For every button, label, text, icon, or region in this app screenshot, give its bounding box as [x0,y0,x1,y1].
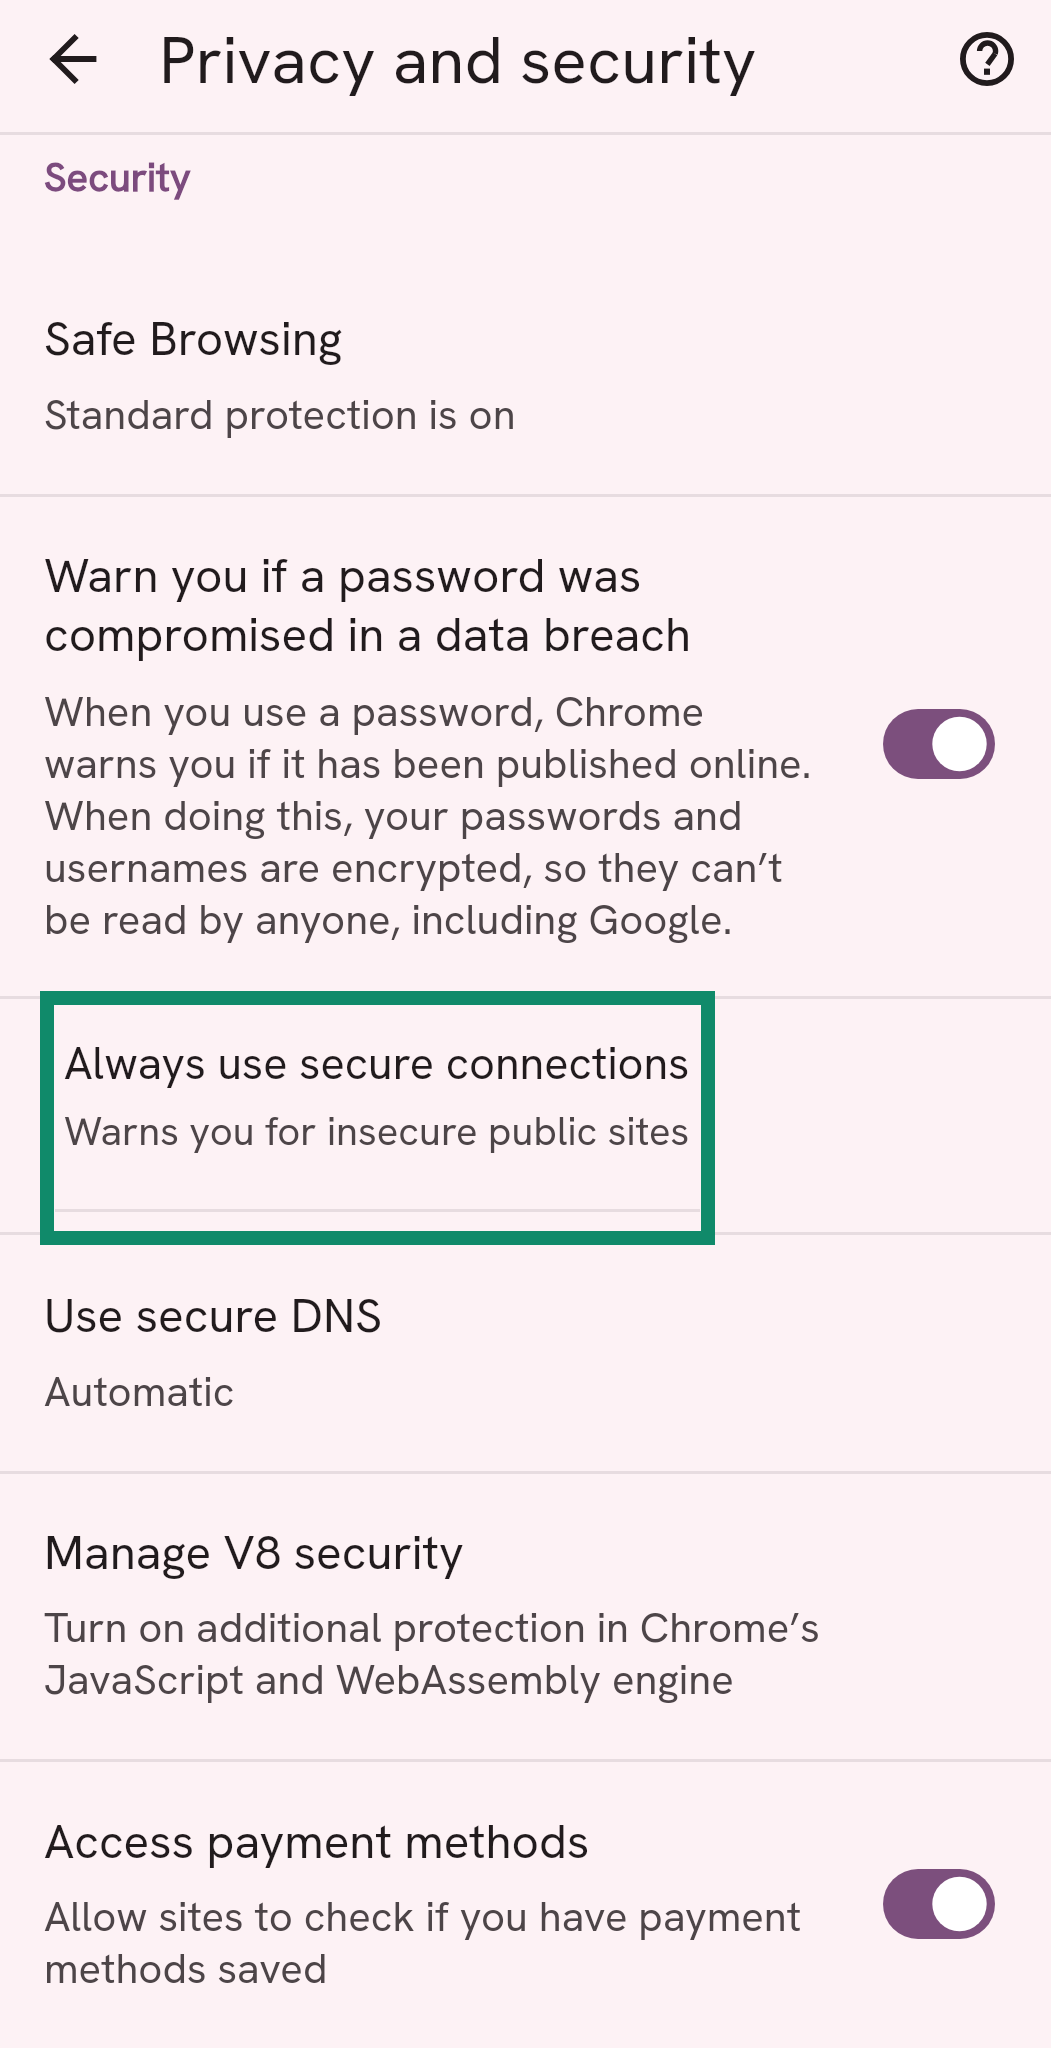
staticText: When doing this, your passwords and [44,790,743,842]
staticText: compromised in a data breach [44,605,691,665]
staticText: usernames are encrypted, so they can’t [44,842,783,894]
staticText: Automatic [44,1366,235,1418]
button[interactable]: Warn you if a password was compromised i… [867,693,1011,795]
button[interactable]: Access payment methods [0,1762,1051,2048]
staticText: Turn on additional protection in Chrome’… [44,1602,820,1654]
button[interactable]: Safe Browsing [0,134,1051,495]
button[interactable]: Manage V8 security [0,1474,1051,1760]
staticText: Privacy and security [159,20,757,102]
staticText: be read by anyone, including Google. [44,894,733,946]
button[interactable]: Always use secure connections [0,999,1051,1233]
button[interactable]: Use secure DNS [0,1235,1051,1472]
staticText: Use secure DNS [44,1286,383,1346]
staticText: warns you if it has been published onlin… [44,738,812,790]
button[interactable]: Access payment methods [867,1853,1011,1955]
staticText: Warn you if a password was [44,546,642,606]
staticText: When you use a password, Chrome [44,686,705,738]
staticText: Security [44,153,191,203]
staticText: methods saved [44,1943,328,1995]
button[interactable]: Navigate up [25,9,125,109]
staticText: JavaScript and WebAssembly engine [44,1654,734,1706]
staticText: Access payment methods [44,1812,590,1872]
button[interactable]: Warn you if a password was [0,497,1051,997]
staticText: Safe Browsing [44,309,343,369]
staticText: Standard protection is on [44,389,516,441]
staticText: Always use secure connections [64,1036,690,1092]
staticText: Manage V8 security [44,1523,464,1583]
staticText: Warns you for insecure public sites [64,1107,690,1157]
staticText: Allow sites to check if you have payment [44,1891,802,1943]
button[interactable]: Help and feedback [937,9,1037,109]
